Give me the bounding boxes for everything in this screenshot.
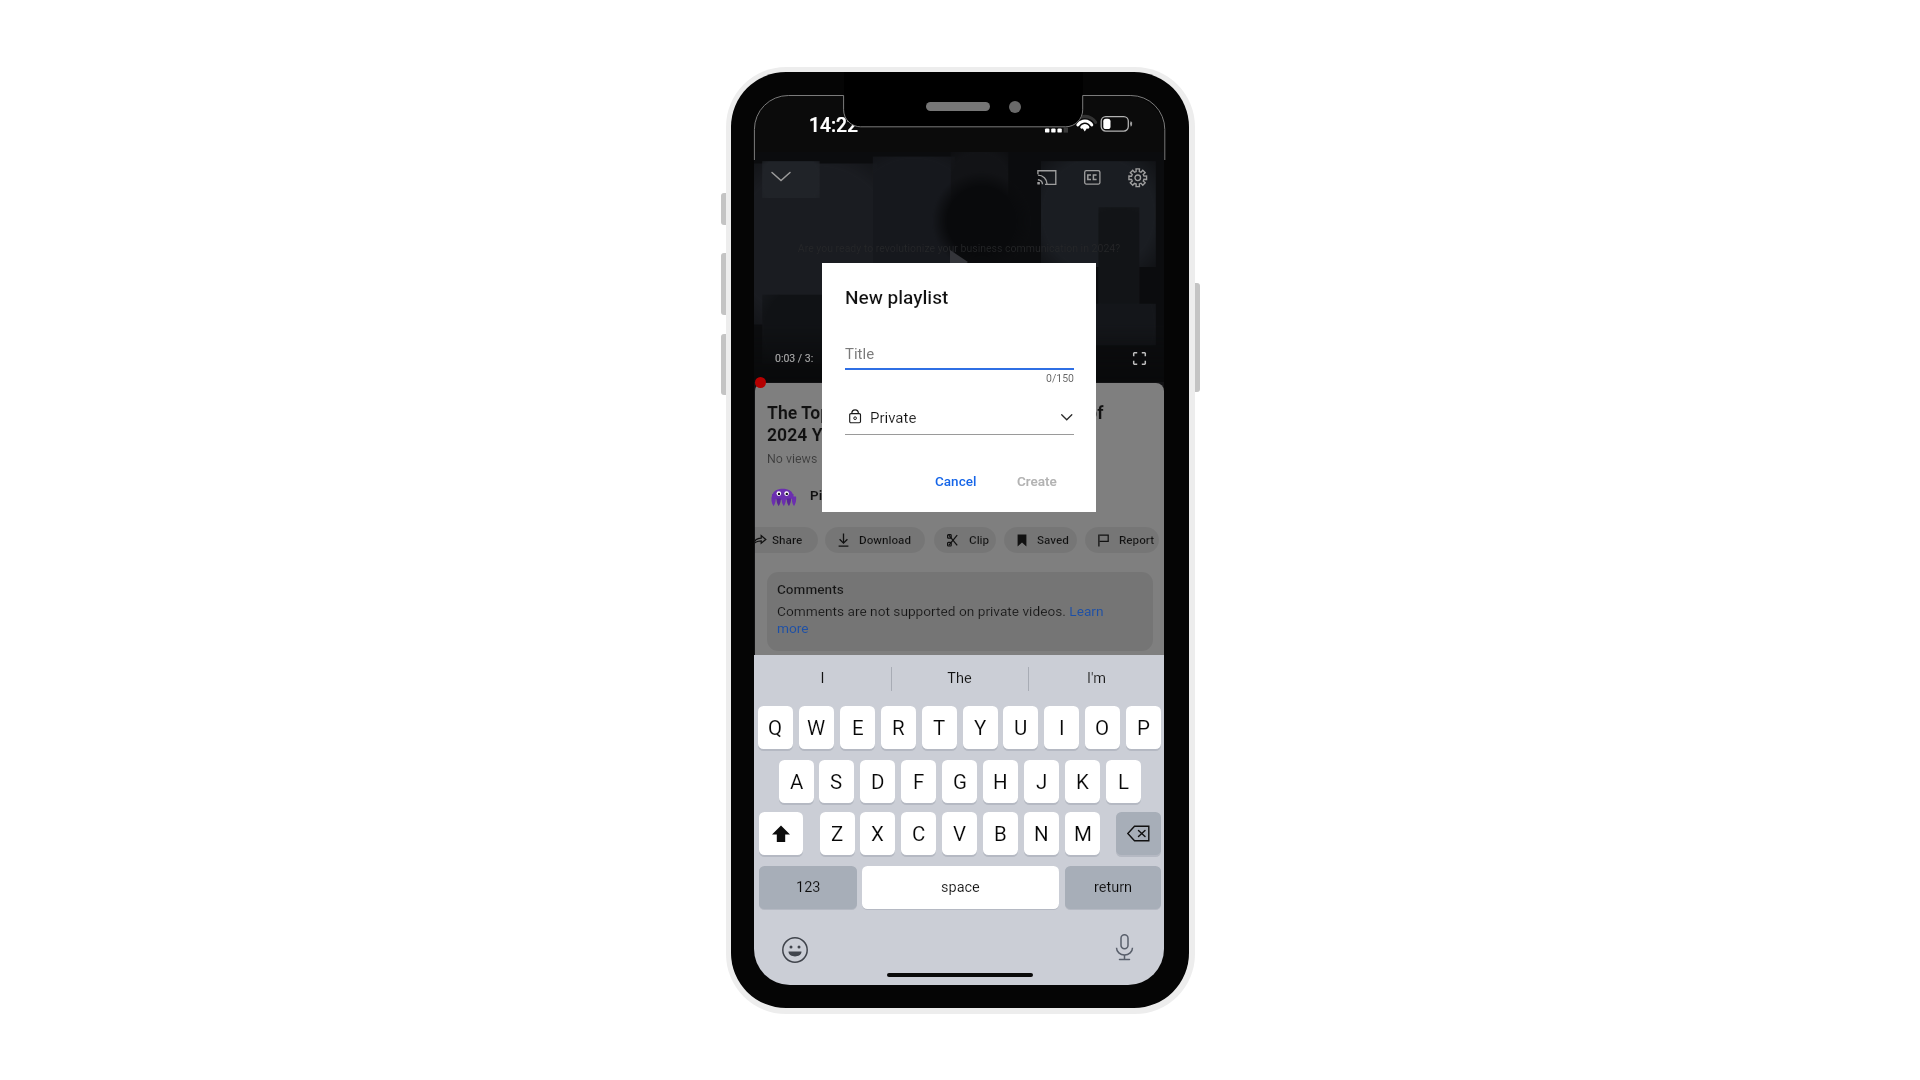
button[interactable]: V: [942, 812, 977, 855]
staticText: Cancel: [935, 473, 977, 489]
staticText: A: [790, 770, 804, 794]
staticText: Y: [974, 716, 987, 740]
staticText: Comments are not supported on private vi…: [777, 603, 1111, 636]
button[interactable]: S: [819, 760, 854, 803]
button[interactable]: Cancel: [929, 468, 983, 494]
staticText: M: [1074, 822, 1092, 846]
staticText: E: [852, 716, 864, 740]
staticText: New playlist: [845, 286, 949, 308]
staticText: B: [994, 822, 1007, 846]
staticText: N: [1034, 822, 1049, 846]
staticText: The Top 5 Video Communication Trends of: [767, 403, 1104, 424]
button[interactable]: U: [1003, 706, 1038, 749]
staticText: Discover the future of business communic…: [764, 267, 1154, 279]
staticText: W: [807, 716, 826, 740]
button[interactable]: T: [922, 706, 957, 749]
staticText: Comments: [777, 581, 844, 597]
staticText: L: [1118, 770, 1130, 794]
staticText: K: [1076, 770, 1089, 794]
button[interactable]: I: [1044, 706, 1079, 749]
button[interactable]: Share: [754, 527, 818, 553]
button[interactable]: W: [799, 706, 834, 749]
staticText: O: [1095, 716, 1110, 740]
button[interactable]: Saved: [1004, 527, 1077, 553]
staticText: S: [830, 770, 843, 794]
staticText: Report: [1119, 533, 1155, 547]
button[interactable]: Download: [825, 527, 925, 553]
staticText: Download: [859, 533, 912, 547]
button[interactable]: C: [901, 812, 936, 855]
button[interactable]: H: [983, 760, 1018, 803]
button[interactable]: E: [840, 706, 875, 749]
button[interactable]: Backspace: [1116, 812, 1161, 855]
staticText: 123: [796, 879, 821, 896]
staticText: Q: [768, 716, 783, 740]
staticText: G: [953, 770, 967, 794]
staticText: D: [871, 770, 885, 794]
button[interactable]: G: [942, 760, 977, 803]
staticText: P: [1137, 716, 1150, 740]
staticText: 0:03 / 3:: [775, 352, 814, 364]
button[interactable]: L: [1106, 760, 1141, 803]
button[interactable]: Create: [1011, 468, 1063, 494]
staticText: J: [1036, 770, 1048, 794]
staticText: I: [754, 670, 891, 687]
staticText: R: [892, 716, 905, 740]
staticText: H: [993, 770, 1008, 794]
staticText: The: [891, 670, 1028, 687]
button[interactable]: Comments: [767, 572, 1153, 651]
button[interactable]: Z: [820, 812, 855, 855]
staticText: Saved: [1037, 533, 1069, 547]
button[interactable]: J: [1024, 760, 1059, 803]
button[interactable]: A: [779, 760, 814, 803]
staticText: I'm: [1028, 670, 1164, 687]
button[interactable]: M: [1065, 812, 1100, 855]
button[interactable]: B: [983, 812, 1018, 855]
button[interactable]: F: [901, 760, 936, 803]
staticText: X: [871, 822, 884, 846]
staticText: Private: [870, 409, 917, 427]
staticText: U: [1014, 716, 1028, 740]
staticText: T: [933, 716, 946, 740]
staticText: Share: [772, 533, 803, 547]
staticText: Create: [1017, 473, 1057, 489]
button[interactable]: 123: [759, 866, 857, 909]
button[interactable]: X: [860, 812, 895, 855]
button[interactable]: P: [1126, 706, 1161, 749]
staticText: F: [913, 770, 925, 794]
button[interactable]: N: [1024, 812, 1059, 855]
button[interactable]: return: [1065, 866, 1161, 909]
staticText: Are you ready to revolutionize your busi…: [764, 242, 1154, 254]
button[interactable]: O: [1085, 706, 1120, 749]
staticText: space: [941, 879, 980, 896]
staticText: 0/150: [845, 372, 1074, 384]
staticText: Title: [845, 345, 875, 363]
button[interactable]: K: [1065, 760, 1100, 803]
button[interactable]: Q: [758, 706, 793, 749]
staticText: Z: [831, 822, 844, 846]
staticText: I: [1059, 716, 1065, 740]
button[interactable]: Clip: [934, 527, 996, 553]
staticText: Pi: [810, 488, 823, 504]
staticText: 14:22: [809, 114, 858, 137]
button[interactable]: D: [860, 760, 895, 803]
staticText: C: [912, 822, 926, 846]
staticText: return: [1094, 879, 1133, 896]
button[interactable]: Y: [963, 706, 998, 749]
button[interactable]: space: [862, 866, 1059, 909]
staticText: Clip: [969, 533, 990, 547]
staticText: No views ·: [767, 451, 827, 466]
staticText: 2024 You Need to Know: [767, 425, 956, 446]
button[interactable]: R: [881, 706, 916, 749]
button[interactable]: Report: [1085, 527, 1159, 553]
staticText: V: [953, 822, 967, 846]
button[interactable]: Shift: [759, 812, 803, 855]
